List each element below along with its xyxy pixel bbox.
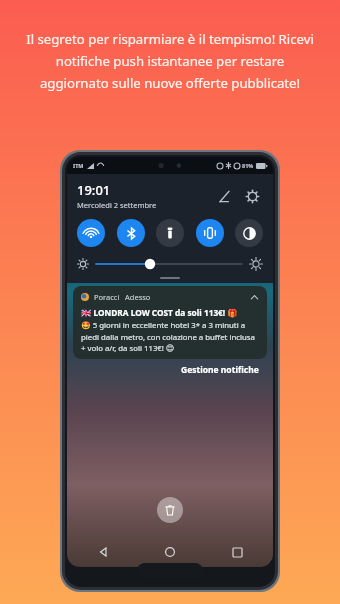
button[interactable]: Recents (227, 542, 247, 562)
staticText: 81% (242, 162, 254, 169)
staticText: 🇬🇧 LONDRA LOW COST da soli 113€! 🎁 (81, 307, 238, 318)
button[interactable]: Collapse (250, 293, 259, 302)
button[interactable]: Toggle (196, 219, 224, 247)
button[interactable]: Toggle (77, 219, 105, 247)
staticText: ITM (73, 162, 84, 169)
button[interactable]: Poracci (73, 286, 267, 359)
staticText: Mercoledì 2 settembre (77, 200, 157, 210)
button[interactable]: Settings (241, 185, 263, 207)
button[interactable]: Delete (157, 497, 183, 523)
button[interactable]: Toggle (235, 219, 263, 247)
staticText: Poracci (94, 292, 120, 302)
button[interactable]: Home (160, 542, 180, 562)
button[interactable]: Gestione notifiche (177, 362, 263, 378)
staticText: 19:01 (77, 181, 111, 199)
button[interactable]: Toggle (117, 219, 145, 247)
staticText: Gestione notifiche (181, 364, 259, 376)
staticText: 🤩 5 giorni in eccellente hotel 3* a 3 mi… (81, 320, 259, 353)
button[interactable] (96, 257, 242, 271)
button[interactable]: Home (137, 563, 203, 579)
staticText: Adesso (125, 292, 151, 302)
staticText: Il segreto per risparmiare è il tempismo… (20, 30, 320, 92)
button[interactable]: Back (93, 542, 113, 562)
button[interactable]: Toggle (156, 219, 184, 247)
button[interactable]: Edit (213, 185, 235, 207)
